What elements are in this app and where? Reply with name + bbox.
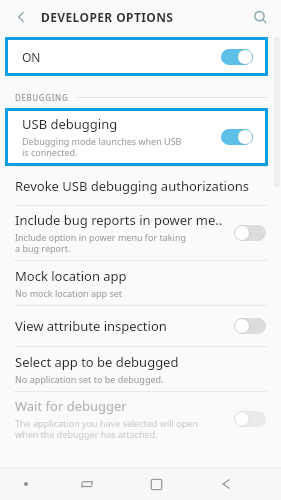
button[interactable]: Switch off — [234, 410, 266, 428]
button[interactable]: Wait for debugger — [0, 392, 281, 446]
button[interactable]: Mock location app — [0, 261, 281, 305]
staticText: Select app to be debugged — [15, 353, 179, 371]
button[interactable]: Recent apps — [52, 468, 121, 500]
staticText: Include bug reports in power me.. — [15, 211, 223, 229]
button[interactable]: Switch off — [234, 317, 266, 335]
button[interactable]: Back — [8, 4, 34, 30]
button[interactable]: ON — [8, 40, 265, 73]
button[interactable]: Select app to be debugged — [0, 347, 281, 391]
button[interactable]: Include bug reports in power me.. — [0, 206, 281, 260]
staticText: DEVELOPER OPTIONS — [41, 9, 174, 25]
staticText: Mock location app — [15, 267, 127, 285]
staticText: View attribute inspection — [15, 317, 167, 335]
button[interactable]: Switch on — [221, 48, 253, 66]
staticText: Include option in power menu for taking … — [15, 231, 186, 255]
button[interactable]: Revoke USB debugging authorizations — [0, 167, 281, 205]
staticText: No mock location app set — [15, 287, 123, 299]
staticText: USB debugging — [22, 115, 118, 133]
button[interactable]: Search — [247, 4, 273, 30]
staticText: DEBUGGING — [15, 92, 69, 103]
button[interactable]: USB debugging — [8, 111, 265, 163]
button[interactable]: Home — [121, 468, 191, 500]
staticText: Revoke USB debugging authorizations — [15, 177, 250, 195]
staticText: ON — [22, 49, 41, 65]
button[interactable]: Switch on — [221, 128, 253, 146]
button[interactable]: Back — [191, 468, 261, 500]
staticText: Debugging mode launches when USB is conn… — [22, 135, 182, 159]
button[interactable]: Menu indicator — [0, 468, 52, 500]
button[interactable]: View attribute inspection — [0, 306, 281, 346]
staticText: Wait for debugger — [15, 397, 127, 415]
staticText: The application you have selected will o… — [15, 417, 198, 441]
button[interactable]: Switch off — [234, 224, 266, 242]
staticText: No application set to be debugged. — [15, 373, 164, 385]
